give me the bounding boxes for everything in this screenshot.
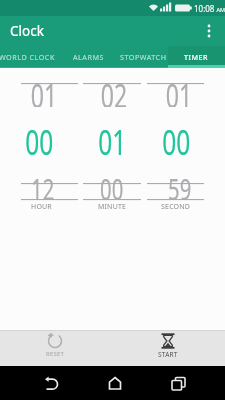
staticText: 00 — [162, 118, 191, 166]
staticText: 02 — [101, 83, 127, 107]
staticText: AM — [215, 6, 225, 13]
button[interactable]: TIMER — [156, 46, 225, 68]
staticText: STOPWATCH — [120, 52, 167, 62]
button[interactable]: ALARMS — [48, 46, 128, 68]
staticText: RESET — [46, 350, 65, 358]
staticText: MINUTE — [98, 202, 127, 212]
staticText: 01 — [98, 118, 127, 166]
staticText: ALARMS — [73, 52, 104, 62]
staticText: 10:08 — [194, 3, 215, 14]
button[interactable]: STOPWATCH — [103, 46, 183, 68]
button[interactable] — [36, 370, 66, 396]
button[interactable] — [100, 370, 130, 396]
staticText: HOUR — [31, 202, 52, 212]
button[interactable]: WORLD CLOCK — [0, 46, 67, 68]
staticText: 01 — [166, 83, 192, 107]
staticText: 12 — [31, 169, 55, 208]
button[interactable] — [163, 370, 193, 396]
button[interactable]: RESET — [25, 330, 85, 366]
staticText: WORLD CLOCK — [0, 52, 55, 62]
staticText: 59 — [168, 169, 192, 208]
staticText: 00 — [25, 118, 54, 166]
staticText: Clock — [10, 22, 44, 40]
staticText: START — [158, 350, 178, 359]
staticText: 00 — [100, 169, 124, 208]
button[interactable]: START — [138, 330, 198, 366]
staticText: 01 — [31, 83, 57, 107]
button[interactable] — [197, 19, 221, 43]
staticText: SECOND — [161, 202, 191, 212]
staticText: TIMER — [184, 52, 208, 62]
